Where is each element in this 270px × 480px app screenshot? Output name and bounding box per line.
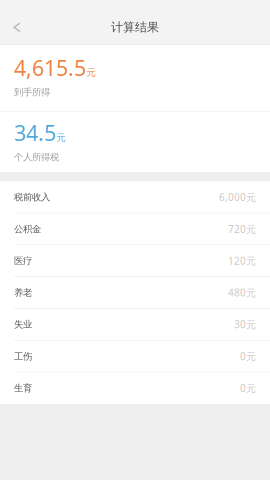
staticText: 0元 <box>240 349 256 363</box>
button[interactable]: 养老 <box>0 277 270 308</box>
staticText: 4,615.5 <box>14 54 86 82</box>
staticText: 30元 <box>234 318 256 331</box>
button[interactable]: Back <box>0 10 34 44</box>
staticText: 元 <box>86 67 95 78</box>
button[interactable]: 工伤 <box>0 341 270 372</box>
staticText: 生育 <box>14 382 32 394</box>
staticText: 6,000元 <box>219 190 256 204</box>
staticText: 720元 <box>228 222 256 236</box>
staticText: 工伤 <box>14 351 32 362</box>
staticText: 到手所得 <box>14 86 50 98</box>
button[interactable]: 公积金 <box>0 213 270 245</box>
staticText: 个人所得税 <box>14 151 59 163</box>
staticText: 计算结果 <box>111 20 159 35</box>
staticText: 公积金 <box>14 223 41 235</box>
staticText: 养老 <box>14 287 32 298</box>
staticText: 34.5 <box>14 119 56 147</box>
button[interactable]: 医疗 <box>0 245 270 276</box>
staticText: 480元 <box>228 286 256 299</box>
button[interactable]: 失业 <box>0 309 270 340</box>
button[interactable]: 生育 <box>0 372 270 404</box>
staticText: 失业 <box>14 319 32 330</box>
staticText: 税前收入 <box>14 191 50 203</box>
staticText: 120元 <box>228 254 256 268</box>
staticText: 医疗 <box>14 255 32 267</box>
staticText: 元 <box>56 132 65 143</box>
button[interactable]: 税前收入 <box>0 182 270 213</box>
staticText: 0元 <box>240 381 256 395</box>
